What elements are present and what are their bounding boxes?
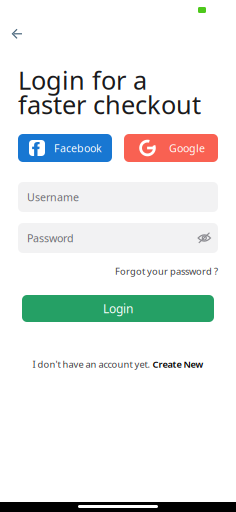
staticText: Username (27, 190, 79, 204)
staticText: Create New (152, 358, 203, 370)
staticText: Facebook (54, 141, 102, 155)
button[interactable]: Show password (197, 233, 211, 243)
button[interactable]: Forgot your password ? (115, 265, 218, 277)
button[interactable]: Facebook (18, 134, 112, 162)
staticText: faster checkout (18, 88, 201, 121)
staticText: Password (27, 231, 74, 245)
button[interactable]: Back (0, 21, 35, 47)
staticText: Forgot your password ? (115, 265, 218, 277)
staticText: Google (169, 141, 205, 155)
button[interactable]: Login (22, 295, 214, 322)
button[interactable]: Google (124, 134, 218, 162)
staticText: Login (103, 300, 133, 316)
button[interactable]: Username (18, 182, 218, 212)
staticText: Login for a (18, 63, 147, 97)
button[interactable]: Create New (152, 358, 203, 370)
staticText: I don't have an account yet. (32, 358, 152, 370)
